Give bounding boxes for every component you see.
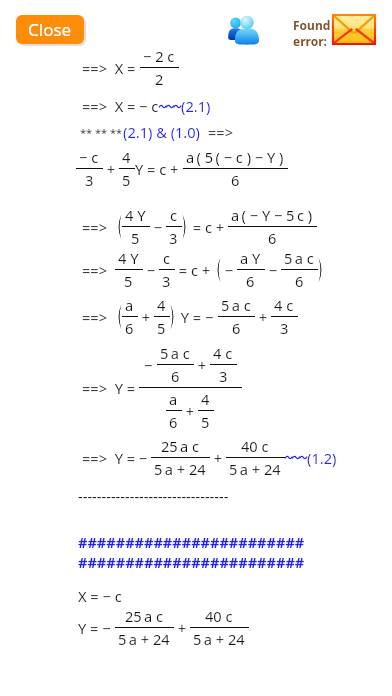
staticText: 4 Y xyxy=(118,248,139,268)
staticText: a Y xyxy=(240,248,261,268)
staticText: 3 xyxy=(169,228,178,248)
staticText: 5 xyxy=(122,170,131,190)
staticText: ==> xyxy=(82,260,115,280)
staticText: (2.1) xyxy=(181,96,211,116)
staticText: + xyxy=(138,307,154,327)
staticText: 3 xyxy=(280,318,289,338)
staticText: 5 xyxy=(201,412,210,432)
staticText: 5 a + 24 xyxy=(118,629,170,649)
staticText: 3 xyxy=(85,170,94,190)
staticText: ==> xyxy=(82,307,115,327)
staticText: + xyxy=(174,618,190,638)
staticText: 6 xyxy=(231,170,240,190)
staticText: ==> xyxy=(208,122,234,142)
staticText: ==> Y = xyxy=(82,378,139,398)
staticText: Y = − xyxy=(78,618,115,638)
staticText: c xyxy=(170,205,178,225)
staticText: − xyxy=(144,355,157,375)
staticText: + xyxy=(255,307,271,327)
staticText: 5 a c xyxy=(221,295,251,315)
staticText: + xyxy=(182,401,198,421)
staticText: Y = c + xyxy=(135,159,183,179)
staticText: 5 a + 24 xyxy=(229,459,281,479)
staticText: − 2 c xyxy=(143,46,175,66)
button[interactable]: Close xyxy=(16,15,84,44)
staticText: error: xyxy=(293,33,327,49)
staticText: (2.1) & (1.0) xyxy=(123,122,208,142)
staticText: -------------------------------- xyxy=(78,486,229,506)
staticText: = c + xyxy=(175,260,214,280)
staticText: − xyxy=(143,260,159,280)
staticText: 5 xyxy=(157,318,166,338)
staticText: − xyxy=(150,217,166,237)
staticText: 6 xyxy=(246,271,255,291)
staticText: ==> X = − c xyxy=(82,96,159,116)
staticText: 5 a + 24 xyxy=(154,459,206,479)
staticText: + xyxy=(210,448,226,468)
staticText: − xyxy=(221,260,237,280)
staticText: 4 Y xyxy=(125,205,146,225)
staticText: 6 xyxy=(169,412,178,432)
staticText: a ( − Y − 5 c ) xyxy=(231,205,313,225)
staticText: (1.2) xyxy=(307,448,337,468)
staticText: 3 xyxy=(219,366,228,386)
staticText: = c + xyxy=(189,217,228,237)
staticText: ######################## xyxy=(78,532,305,552)
button[interactable]: Report an error xyxy=(332,14,376,45)
staticText: 4 xyxy=(157,295,166,315)
staticText: 6 xyxy=(232,318,241,338)
staticText: 4 xyxy=(201,389,210,409)
staticText: 40 c xyxy=(241,436,269,456)
staticText: − xyxy=(265,260,281,280)
staticText: ######################## xyxy=(78,552,305,572)
staticText: Found xyxy=(293,17,331,33)
button[interactable]: Contacts xyxy=(226,14,259,45)
staticText: 2 xyxy=(155,69,164,89)
staticText: Close xyxy=(28,18,72,41)
staticText: 5 xyxy=(131,228,140,248)
staticText: ** ** ** xyxy=(80,125,123,140)
staticText: 4 c xyxy=(213,343,233,363)
staticText: a xyxy=(125,295,134,315)
staticText: ==> xyxy=(82,217,115,237)
staticText: 25 a c xyxy=(125,606,164,626)
staticText: − c xyxy=(79,147,99,167)
staticText: 5 a c xyxy=(160,343,190,363)
staticText: 4 c xyxy=(274,295,294,315)
staticText: 3 xyxy=(162,271,171,291)
staticText: Y = − xyxy=(177,307,218,327)
staticText: X = − c xyxy=(78,586,122,606)
staticText: 6 xyxy=(268,228,277,248)
staticText: ==> X = xyxy=(82,58,140,78)
staticText: 40 c xyxy=(205,606,233,626)
staticText: 6 xyxy=(171,366,180,386)
staticText: 5 xyxy=(124,271,133,291)
staticText: ==> Y = − xyxy=(82,448,151,468)
staticText: 6 xyxy=(295,271,304,291)
staticText: + xyxy=(103,159,119,179)
staticText: 25 a c xyxy=(161,436,200,456)
staticText: 5 a c xyxy=(284,248,314,268)
staticText: c xyxy=(163,248,171,268)
staticText: + xyxy=(194,355,210,375)
staticText: a ( 5 ( − c ) − Y ) xyxy=(186,147,284,167)
staticText: 6 xyxy=(125,318,134,338)
staticText: 4 xyxy=(122,147,131,167)
staticText: a xyxy=(169,389,178,409)
staticText: 5 a + 24 xyxy=(193,629,245,649)
